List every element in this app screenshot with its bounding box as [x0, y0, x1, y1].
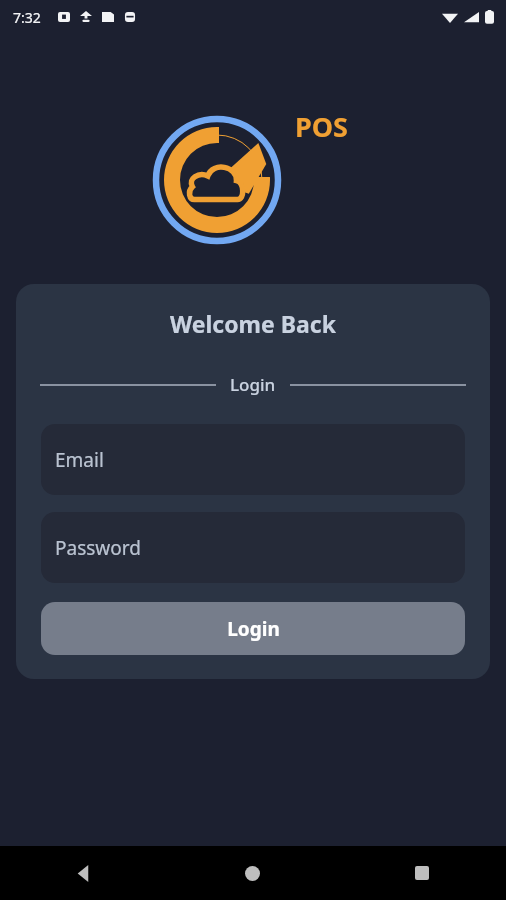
staticText: Welcome Back: [170, 308, 336, 339]
staticText: 7:32: [13, 8, 41, 27]
staticText: Email: [55, 447, 104, 473]
staticText: Login: [230, 373, 276, 396]
staticText: Password: [55, 535, 141, 561]
button[interactable]: Back: [0, 846, 168, 900]
button[interactable]: Email: [41, 424, 465, 495]
button[interactable]: Login: [41, 602, 465, 655]
button[interactable]: Recents: [337, 846, 506, 900]
button[interactable]: Home: [168, 846, 337, 900]
button[interactable]: Password: [41, 512, 465, 583]
staticText: Login: [227, 616, 280, 642]
staticText: POS: [295, 108, 349, 145]
